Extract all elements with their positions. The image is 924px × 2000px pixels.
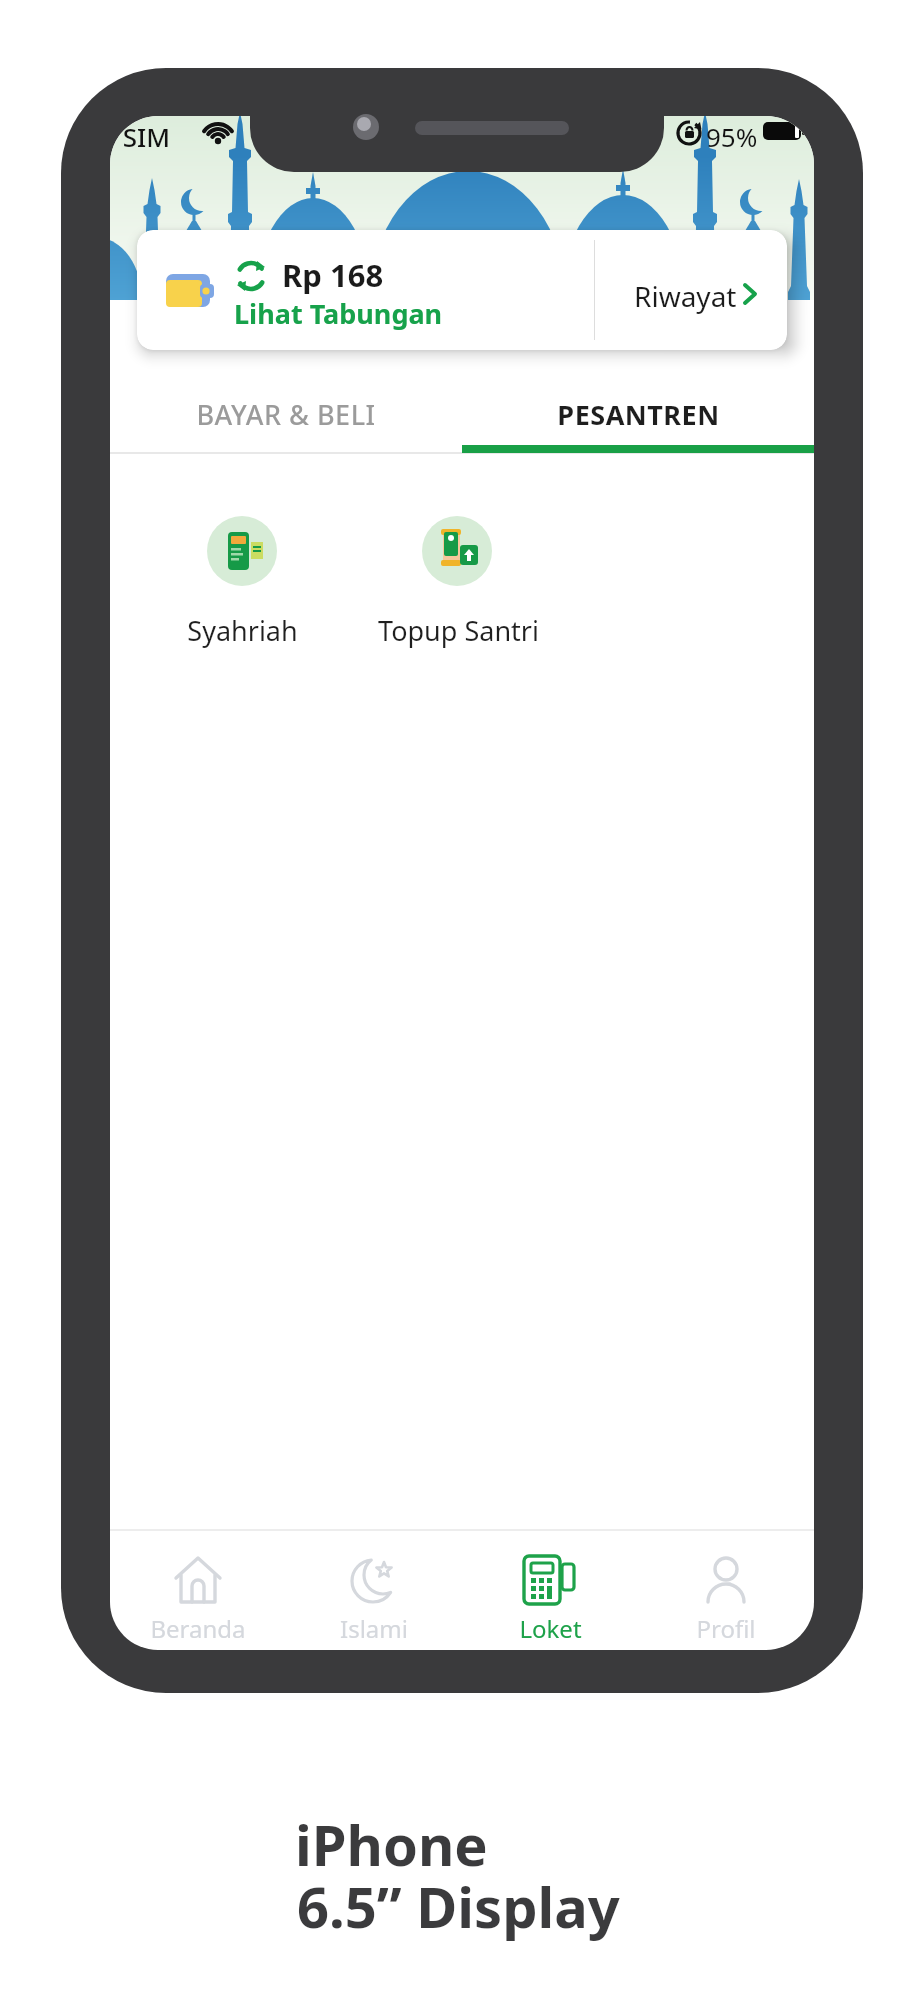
button[interactable] (286, 1530, 462, 1650)
button[interactable] (638, 1530, 814, 1650)
button[interactable] (462, 1530, 638, 1650)
button[interactable]: Rp 168 (137, 230, 787, 350)
staticText: PESANTREN (557, 396, 720, 433)
button[interactable] (110, 380, 462, 440)
button[interactable] (172, 506, 312, 656)
staticText: Syahriah (187, 612, 298, 649)
staticText: o SIM (110, 119, 171, 154)
button[interactable] (387, 506, 527, 656)
button[interactable] (110, 1530, 286, 1650)
staticText: Beranda (150, 1612, 246, 1645)
staticText: Topup Santri (378, 612, 539, 649)
staticText: iPhone (295, 1806, 488, 1882)
staticText: Profil (696, 1612, 756, 1645)
staticText: Riwayat (634, 277, 737, 315)
staticText: Islami (340, 1612, 408, 1645)
button[interactable] (462, 380, 814, 440)
staticText: Lihat Tabungan (234, 295, 443, 332)
staticText: Rp 168 (282, 254, 384, 296)
staticText: 95% (706, 119, 758, 154)
staticText: Loket (519, 1612, 582, 1645)
staticText: 6.5” Display (297, 1868, 620, 1944)
staticText: BAYAR & BELI (196, 396, 376, 433)
